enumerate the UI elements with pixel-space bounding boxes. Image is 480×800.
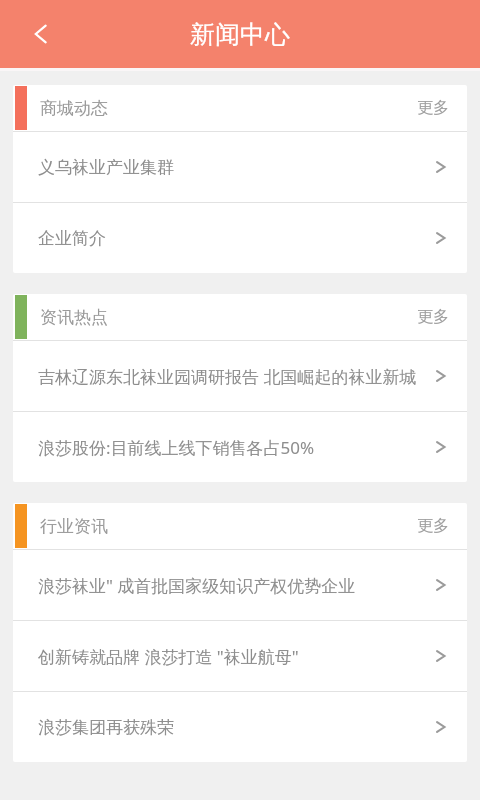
button[interactable]: 企业简介 — [13, 203, 467, 273]
button[interactable]: 行业资讯 — [13, 503, 467, 549]
staticText: 创新铸就品牌 浪莎打造 "袜业航母" — [38, 645, 427, 668]
staticText: 更多 — [417, 516, 449, 536]
button[interactable]: 浪莎袜业" 成首批国家级知识产权优势企业 — [13, 550, 467, 620]
button[interactable]: 创新铸就品牌 浪莎打造 "袜业航母" — [13, 621, 467, 691]
staticText: 新闻中心 — [190, 19, 290, 50]
button[interactable]: 浪莎集团再获殊荣 — [13, 692, 467, 762]
button[interactable]: 吉林辽源东北袜业园调研报告 北国崛起的袜业新城 — [13, 341, 467, 411]
staticText: 更多 — [417, 307, 449, 327]
button[interactable]: 商城动态 — [13, 85, 467, 131]
button[interactable]: 资讯热点 — [13, 294, 467, 340]
staticText: 资讯热点 — [40, 307, 108, 328]
staticText: 义乌袜业产业集群 — [38, 157, 427, 178]
button[interactable]: 义乌袜业产业集群 — [13, 132, 467, 202]
staticText: 企业简介 — [38, 228, 427, 249]
staticText: 更多 — [417, 98, 449, 118]
button[interactable]: 浪莎股份:目前线上线下销售各占50% — [13, 412, 467, 482]
staticText: 浪莎袜业" 成首批国家级知识产权优势企业 — [38, 574, 427, 597]
staticText: 浪莎股份:目前线上线下销售各占50% — [38, 436, 427, 459]
staticText: 吉林辽源东北袜业园调研报告 北国崛起的袜业新城 — [38, 365, 427, 388]
staticText: 行业资讯 — [40, 516, 108, 537]
staticText: 商城动态 — [40, 98, 108, 119]
staticText: 浪莎集团再获殊荣 — [38, 717, 427, 738]
button[interactable]: Back — [24, 17, 58, 51]
